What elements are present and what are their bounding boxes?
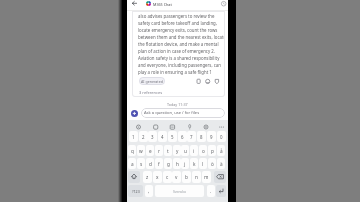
button[interactable]: u — [181, 145, 189, 156]
button[interactable]: a — [128, 158, 136, 169]
button[interactable]: j — [181, 158, 189, 169]
button[interactable]: 1 — [129, 131, 138, 142]
staticText: 3 — [151, 134, 154, 140]
button[interactable]: w — [137, 145, 145, 156]
staticText: 2 — [142, 134, 145, 140]
button[interactable]: g — [164, 158, 172, 169]
button[interactable]: 8 — [197, 131, 206, 142]
button[interactable]: p — [208, 145, 216, 156]
staticText: z — [146, 174, 149, 180]
staticText: locate emergency exits, count the rows — [138, 27, 218, 33]
button[interactable]: k — [190, 158, 198, 169]
button[interactable] — [128, 171, 140, 183]
button[interactable]: ä — [217, 158, 225, 169]
button[interactable] — [132, 1, 137, 6]
button[interactable]: l — [199, 158, 207, 169]
button[interactable]: . — [207, 185, 215, 197]
button[interactable]: v — [172, 171, 181, 183]
staticText: Today 11:37 — [167, 102, 188, 107]
button[interactable]: m — [202, 171, 211, 183]
staticText: y — [176, 148, 179, 154]
staticText: ä — [220, 161, 223, 167]
staticText: safety card before takeoff and landing, — [138, 20, 217, 26]
button[interactable]: 6 — [178, 131, 187, 142]
staticText: 4 — [161, 134, 164, 140]
staticText: 5 — [171, 134, 174, 140]
staticText: , — [148, 188, 150, 194]
staticText: r — [158, 148, 160, 154]
staticText: b — [185, 174, 188, 180]
staticText: 3 references — [139, 90, 163, 95]
button[interactable] — [155, 185, 204, 197]
button[interactable]: t — [164, 145, 172, 156]
staticText: s — [140, 161, 143, 167]
button[interactable]: c — [163, 171, 172, 183]
button[interactable]: å — [217, 145, 225, 156]
button[interactable]: 7 — [187, 131, 196, 142]
staticText: m — [204, 174, 209, 180]
button[interactable]: n — [192, 171, 201, 183]
staticText: also advises passengers to review the — [138, 13, 215, 19]
button[interactable]: AI generated — [139, 77, 165, 85]
staticText: a — [131, 161, 134, 167]
button[interactable]: z — [143, 171, 152, 183]
staticText: d — [149, 161, 152, 167]
button[interactable] — [214, 171, 226, 183]
staticText: Svenska — [173, 189, 186, 194]
button[interactable]: s — [137, 158, 145, 169]
staticText: f — [158, 161, 160, 167]
button[interactable]: e — [146, 145, 154, 156]
staticText: k — [193, 161, 196, 167]
staticText: 7 — [190, 134, 193, 140]
button[interactable]: o — [199, 145, 207, 156]
staticText: i — [193, 148, 195, 154]
staticText: q — [131, 148, 134, 154]
button[interactable]: r — [155, 145, 163, 156]
button[interactable]: y — [173, 145, 181, 156]
button[interactable]: d — [146, 158, 154, 169]
staticText: plan of action in case of emergency 2. — [138, 48, 215, 54]
button[interactable]: b — [182, 171, 191, 183]
button[interactable]: 9 — [207, 131, 216, 142]
staticText: x — [156, 174, 159, 180]
button[interactable] — [216, 185, 226, 197]
staticText: u — [184, 148, 187, 154]
button[interactable]: i — [190, 145, 198, 156]
button[interactable] — [127, 0, 228, 11]
staticText: Aviation safety is a shared responsibili… — [138, 55, 220, 61]
button[interactable]: Ask a question, use / for files — [141, 108, 225, 118]
staticText: v — [175, 174, 178, 180]
staticText: p — [211, 148, 214, 154]
staticText: the flotation device, and make a mental — [138, 41, 219, 47]
button[interactable]: 3 — [148, 131, 157, 142]
staticText: 1 — [132, 134, 135, 140]
button[interactable]: ?123 — [128, 185, 143, 197]
staticText: and everyone, including passengers, can — [138, 62, 221, 68]
staticText: 9 — [210, 134, 213, 140]
button[interactable]: 2 — [139, 131, 148, 142]
button[interactable]: 4 — [158, 131, 167, 142]
staticText: e — [149, 148, 152, 154]
button[interactable]: ö — [208, 158, 216, 169]
staticText: Ask a question, use / for files — [144, 110, 200, 116]
staticText: ö — [211, 161, 214, 167]
staticText: between them and the nearest exits, loca… — [138, 34, 224, 40]
button[interactable]: 5 — [168, 131, 177, 142]
staticText: j — [184, 161, 186, 167]
staticText: play a role in ensuring a safe flight 1 — [138, 69, 212, 75]
button[interactable]: h — [173, 158, 181, 169]
staticText: å — [220, 148, 223, 154]
staticText: ?123 — [132, 189, 140, 194]
staticText: AI generated — [141, 79, 163, 84]
button[interactable]: 0 — [217, 131, 226, 142]
staticText: g — [167, 161, 170, 167]
button[interactable]: q — [128, 145, 136, 156]
button[interactable] — [221, 1, 226, 6]
button[interactable]: f — [155, 158, 163, 169]
button[interactable]: x — [153, 171, 162, 183]
button[interactable] — [131, 110, 138, 117]
button[interactable]: , — [145, 185, 153, 197]
staticText: t — [167, 148, 169, 154]
button[interactable] — [196, 78, 220, 85]
staticText: n — [195, 174, 198, 180]
